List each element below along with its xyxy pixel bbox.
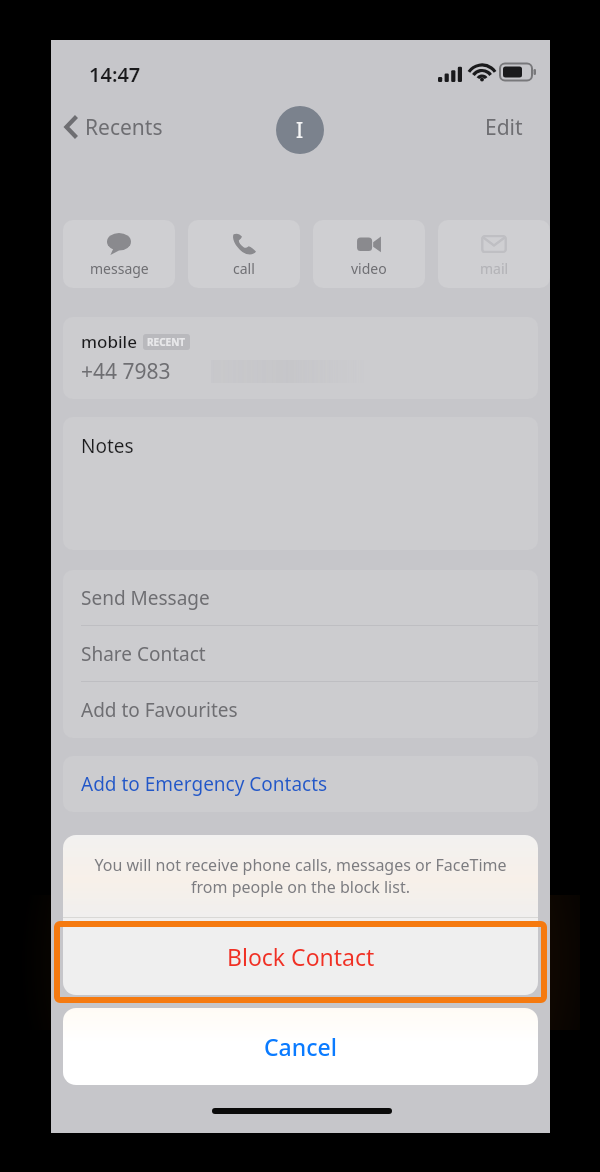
button[interactable]: mail xyxy=(438,220,550,288)
button[interactable]: Add to Emergency Contacts xyxy=(63,756,538,812)
staticText: video xyxy=(351,259,387,278)
staticText: Send Message xyxy=(81,585,210,611)
staticText: Add to Favourites xyxy=(81,697,238,723)
staticText: call xyxy=(233,259,255,278)
staticText: Notes xyxy=(81,433,134,459)
button[interactable]: Contact photo xyxy=(276,106,324,154)
button[interactable]: video xyxy=(313,220,425,288)
staticText: message xyxy=(90,259,149,278)
staticText: 14:47 xyxy=(89,61,141,88)
staticText: mobile xyxy=(81,330,137,353)
staticText: Block Contact xyxy=(227,941,375,972)
staticText: Share Contact xyxy=(81,641,206,667)
staticText: +44 7983 xyxy=(81,357,171,386)
button[interactable]: mobile xyxy=(63,317,538,399)
button[interactable]: Notes xyxy=(63,417,538,550)
staticText: I xyxy=(296,116,304,145)
button[interactable]: Add to Favourites xyxy=(63,682,538,738)
staticText: Edit xyxy=(485,113,523,142)
staticText: mail xyxy=(480,259,509,278)
button[interactable]: Edit xyxy=(471,104,537,150)
button[interactable]: Share Contact xyxy=(63,626,538,682)
staticText: Add to Emergency Contacts xyxy=(81,771,328,797)
staticText: You will not receive phone calls, messag… xyxy=(79,854,522,898)
button[interactable]: call xyxy=(188,220,300,288)
staticText: RECENT xyxy=(147,335,186,349)
button[interactable]: Send Message xyxy=(63,570,538,626)
staticText: Recents xyxy=(85,113,163,142)
button[interactable]: message xyxy=(63,220,175,288)
button[interactable]: Block Contact xyxy=(63,918,538,995)
button[interactable]: Recents xyxy=(57,104,171,150)
button[interactable]: Cancel xyxy=(63,1008,538,1085)
staticText: Cancel xyxy=(264,1031,337,1062)
